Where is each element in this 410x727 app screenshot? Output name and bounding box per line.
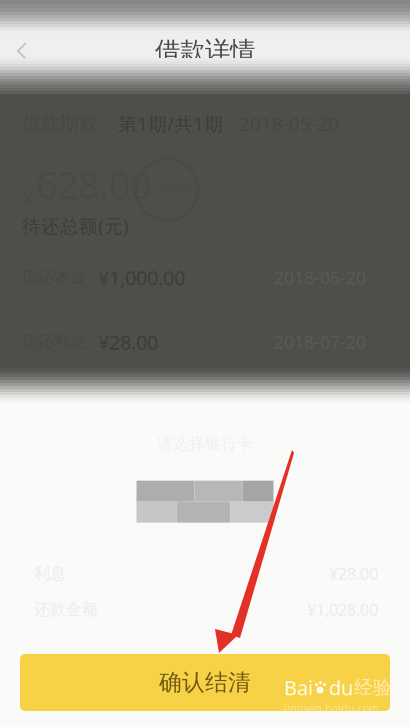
staticText: ¥1,028.00 [307, 599, 378, 620]
staticText: 第1期/共1期 [118, 111, 223, 136]
staticText: 经验 [354, 676, 392, 699]
staticText: ¥1,000.00 [98, 264, 185, 291]
staticText: 还款金额 [34, 600, 98, 619]
staticText: Bai [284, 674, 313, 701]
staticText: 借款详情 [155, 35, 255, 66]
button[interactable]: 确认结清 [20, 654, 390, 711]
staticText: du [329, 674, 353, 701]
staticText: jingyan.baidu.com [284, 701, 379, 715]
button[interactable]: 返回 [0, 33, 48, 69]
staticText: 2018-06-20 [274, 266, 366, 289]
staticText: ¥28.00 [329, 563, 378, 584]
staticText: ¥28.00 [98, 329, 158, 355]
staticText: 2018-07-20 [274, 330, 366, 353]
staticText: 利息 [34, 564, 66, 583]
staticText: 待还总额(元) [22, 213, 129, 238]
staticText: 请选择银行卡 [157, 434, 253, 454]
staticText: 确认结清 [159, 669, 251, 696]
